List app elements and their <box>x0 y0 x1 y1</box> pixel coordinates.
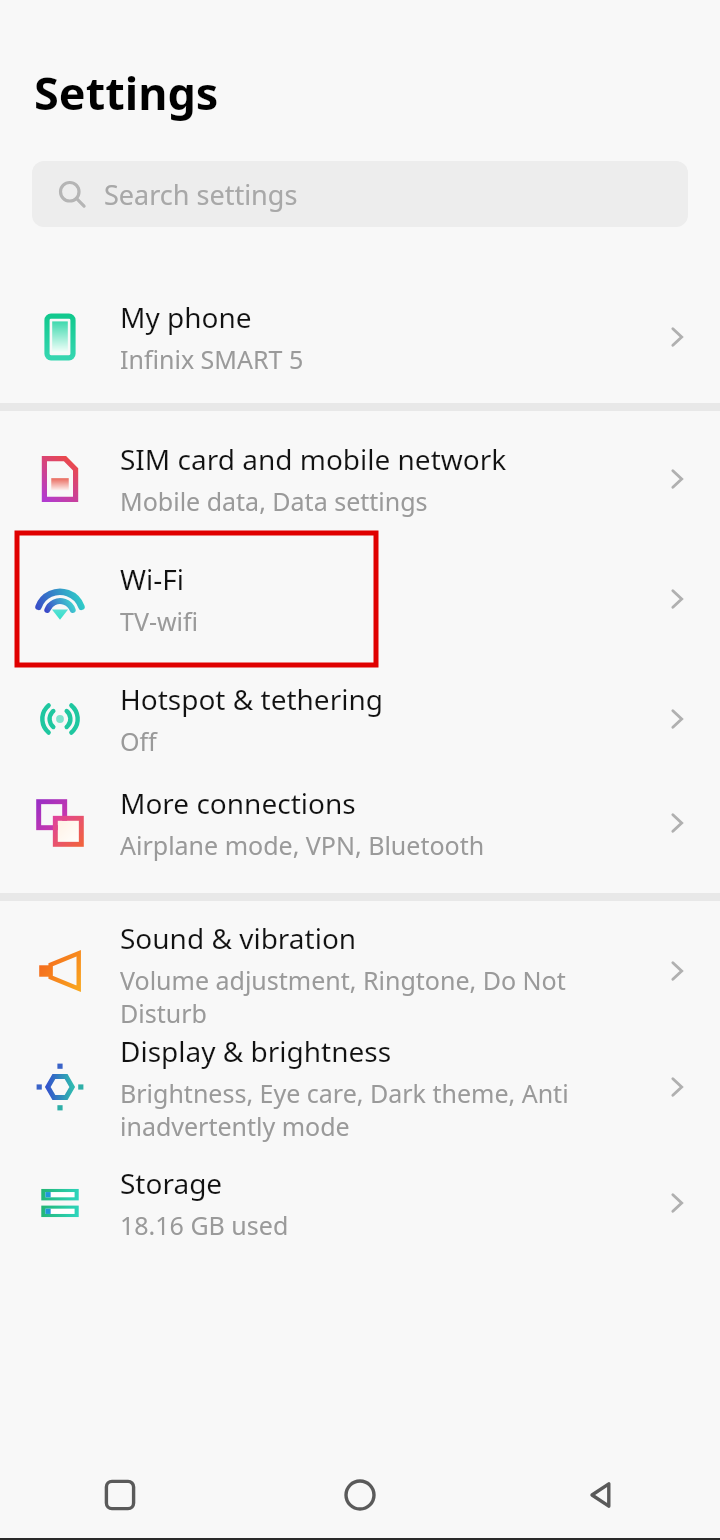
staticText: Mobile data, Data settings <box>120 484 428 518</box>
staticText: 18.16 GB used <box>120 1208 289 1242</box>
button[interactable]: Hotspot & tethering <box>0 667 720 771</box>
staticText: Sound & vibration <box>120 919 357 957</box>
button[interactable]: Recent apps <box>0 1450 240 1540</box>
staticText: Off <box>120 724 157 758</box>
button[interactable]: Display & brightness <box>0 1023 720 1151</box>
button[interactable]: My phone <box>0 285 720 389</box>
staticText: Airplane mode, VPN, Bluetooth <box>120 828 485 862</box>
button[interactable]: Back <box>480 1450 720 1540</box>
staticText: Display & brightness <box>120 1032 392 1070</box>
staticText: Storage <box>120 1164 223 1202</box>
button[interactable]: Home <box>240 1450 480 1540</box>
staticText: My phone <box>120 298 252 336</box>
button[interactable]: Wi-Fi <box>0 531 720 667</box>
staticText: Brightness, Eye care, Dark theme, Anti i… <box>120 1076 569 1143</box>
staticText: Search settings <box>104 176 298 213</box>
staticText: SIM card and mobile network <box>120 440 507 478</box>
staticText: More connections <box>120 784 356 822</box>
button[interactable]: More connections <box>0 771 720 875</box>
staticText: Volume adjustment, Ringtone, Do Not Dist… <box>120 963 634 1023</box>
staticText: Wi-Fi <box>120 560 185 598</box>
button[interactable]: SIM card and mobile network <box>0 427 720 531</box>
button[interactable]: Storage <box>0 1151 720 1255</box>
staticText: Hotspot & tethering <box>120 680 383 718</box>
button[interactable]: Search settings <box>32 161 688 227</box>
staticText: Settings <box>34 62 219 123</box>
button[interactable]: Sound & vibration <box>0 919 720 1023</box>
staticText: TV-wifi <box>120 604 199 638</box>
staticText: Infinix SMART 5 <box>120 342 304 376</box>
